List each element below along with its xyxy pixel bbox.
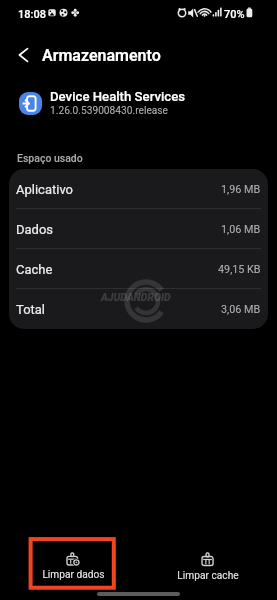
staticText: 49,15 KB — [218, 263, 261, 276]
button[interactable]: Back — [7, 40, 39, 70]
staticText: 3,06 MB — [221, 303, 261, 316]
button[interactable]: Dados — [9, 209, 268, 249]
staticText: Device Health Services — [50, 89, 186, 104]
button[interactable]: Limpar cache — [160, 540, 256, 588]
staticText: Cache — [16, 262, 53, 277]
staticText: 1,06 MB — [221, 223, 261, 236]
staticText: Espaço usado — [17, 152, 83, 164]
staticText: Aplicativo — [16, 182, 74, 197]
staticText: Limpar dados — [42, 569, 105, 581]
staticText: 70% — [224, 8, 245, 21]
button[interactable]: Aplicativo — [9, 169, 268, 209]
staticText: 1,96 MB — [221, 183, 261, 196]
button[interactable]: Cache — [9, 249, 268, 289]
button[interactable]: Total — [9, 289, 268, 329]
staticText: AJUDANDROID — [101, 291, 171, 303]
staticText: Dados — [16, 222, 54, 237]
staticText: Total — [16, 302, 46, 317]
button[interactable]: Limpar dados — [25, 540, 121, 588]
staticText: 1.26.0.539008430.release — [50, 105, 169, 117]
staticText: Limpar cache — [177, 570, 239, 582]
staticText: 18:08 — [18, 8, 46, 21]
staticText: Armazenamento — [42, 46, 161, 65]
